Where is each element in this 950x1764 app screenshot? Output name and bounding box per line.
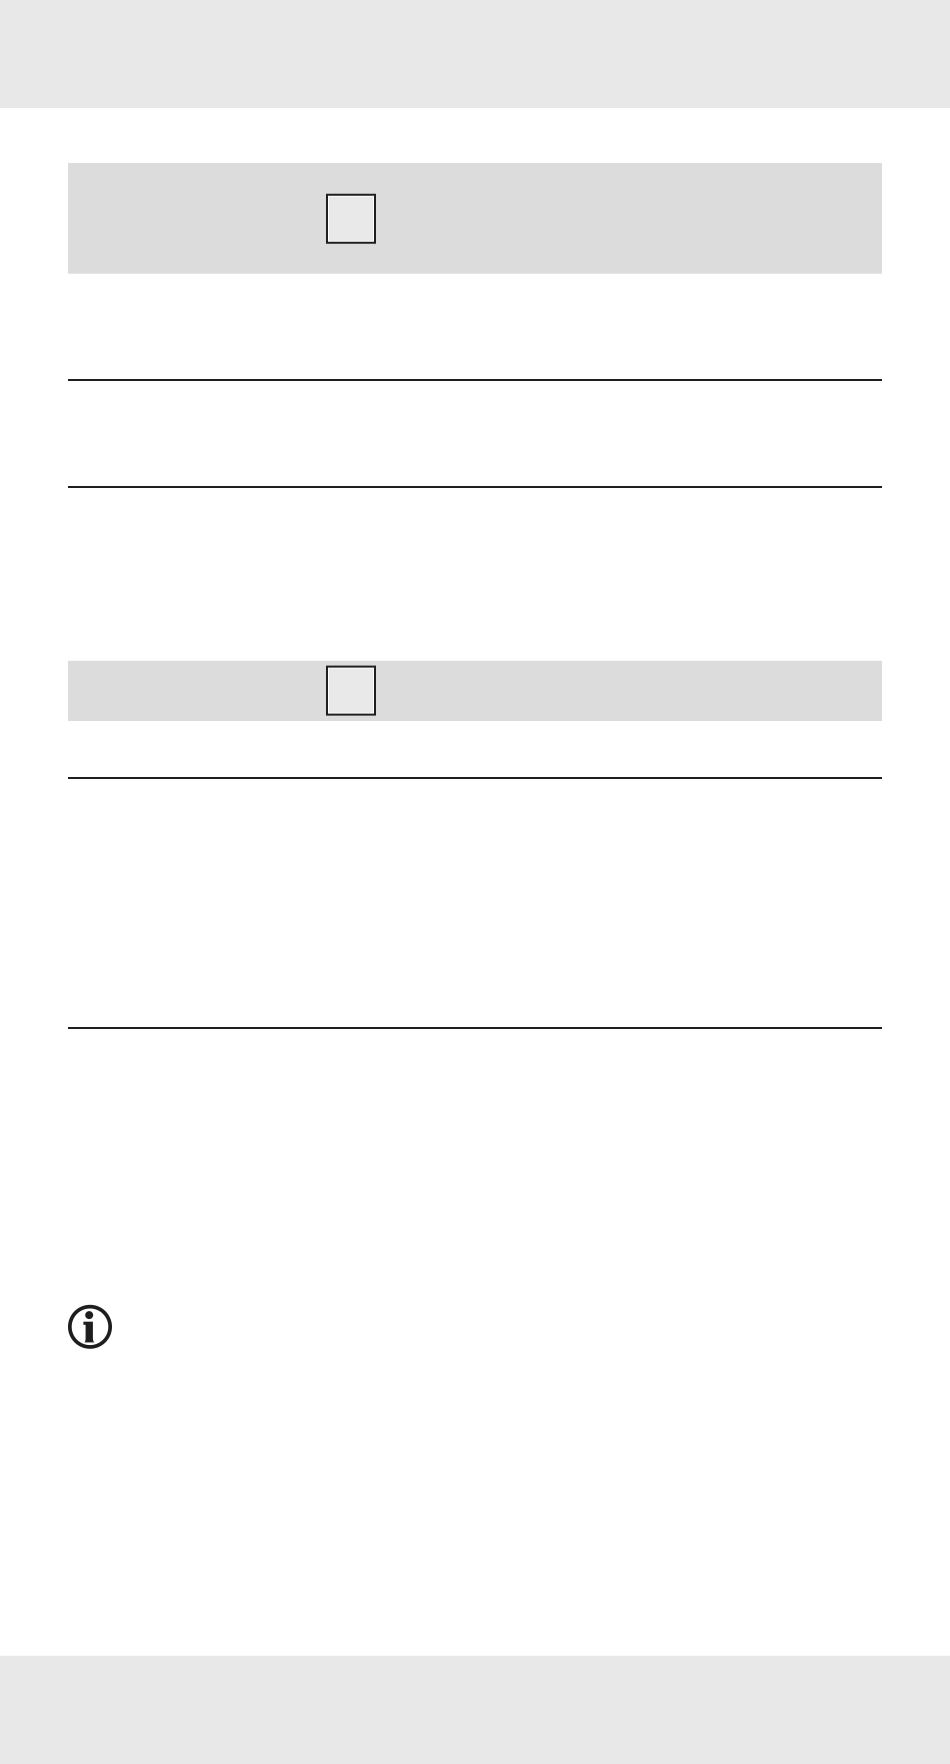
button[interactable]: Information (68, 1305, 112, 1349)
button[interactable]: Image (68, 163, 882, 274)
button[interactable]: Image (68, 661, 882, 721)
